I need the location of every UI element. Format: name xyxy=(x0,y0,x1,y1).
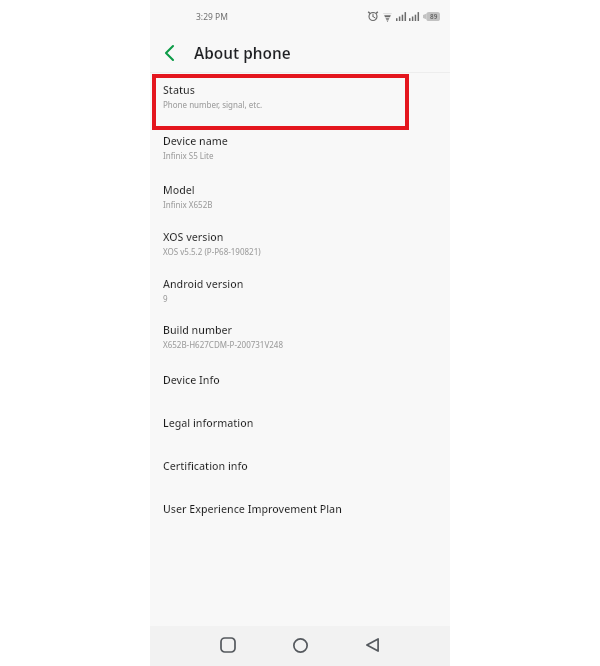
button[interactable]: Back xyxy=(153,36,186,69)
staticText: Certification info xyxy=(163,459,248,473)
staticText: Legal information xyxy=(163,416,254,430)
button[interactable]: Build number xyxy=(150,314,450,361)
button[interactable]: Legal information xyxy=(150,404,450,447)
staticText: Device name xyxy=(163,134,228,148)
button[interactable]: Device name xyxy=(150,125,450,172)
button[interactable]: Certification info xyxy=(150,447,450,490)
button[interactable]: Device Info xyxy=(150,361,450,404)
button[interactable]: Home xyxy=(285,630,315,660)
staticText: 9 xyxy=(163,293,168,304)
staticText: Infinix S5 Lite xyxy=(163,150,214,161)
staticText: 89 xyxy=(430,12,438,21)
staticText: XOS version xyxy=(163,230,224,244)
button[interactable]: Recent apps xyxy=(213,630,243,660)
button[interactable]: User Experience Improvement Plan xyxy=(150,490,450,533)
staticText: X652B-H627CDM-P-200731V248 xyxy=(163,339,283,350)
staticText: Device Info xyxy=(163,373,220,387)
button[interactable]: Model xyxy=(150,174,450,221)
staticText: Build number xyxy=(163,323,233,337)
staticText: About phone xyxy=(194,43,291,64)
staticText: Infinix X652B xyxy=(163,199,213,210)
button[interactable]: Back xyxy=(357,630,387,660)
button[interactable]: Status xyxy=(150,74,450,121)
staticText: 3:29 PM xyxy=(196,11,228,23)
staticText: Android version xyxy=(163,277,244,291)
button[interactable]: XOS version xyxy=(150,221,450,268)
button[interactable]: Android version xyxy=(150,268,450,315)
staticText: User Experience Improvement Plan xyxy=(163,502,342,516)
staticText: Model xyxy=(163,183,195,197)
staticText: Status xyxy=(163,83,195,97)
staticText: XOS v5.5.2 (P-P68-190821) xyxy=(163,246,261,257)
staticText: Phone number, signal, etc. xyxy=(163,99,263,110)
